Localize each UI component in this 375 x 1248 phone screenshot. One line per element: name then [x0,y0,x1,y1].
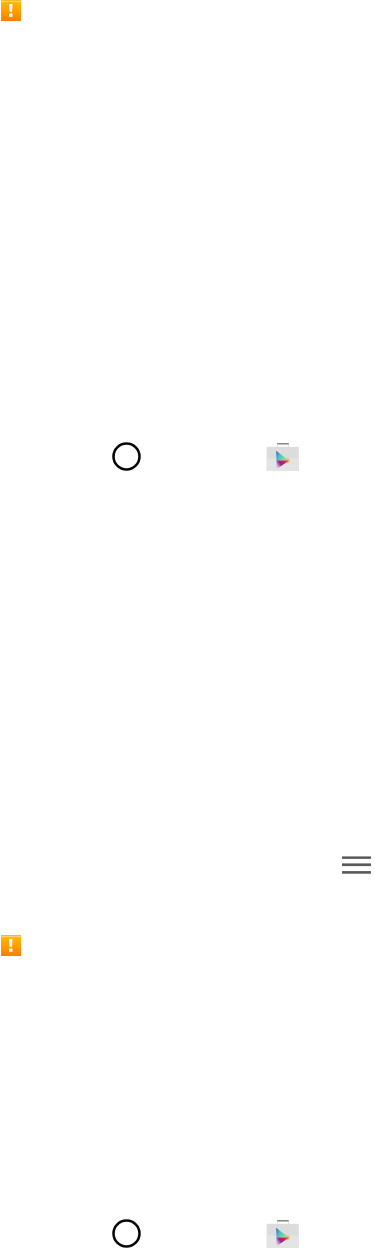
button[interactable]: Image placeholder [112,442,141,471]
button[interactable]: Google Play Store [266,442,300,472]
button[interactable]: Menu [342,855,371,874]
button[interactable]: Image placeholder [112,1219,141,1248]
button[interactable]: Google Play Store [266,1219,300,1248]
button[interactable]: Warning [1,0,21,21]
button[interactable]: Warning [1,935,21,956]
